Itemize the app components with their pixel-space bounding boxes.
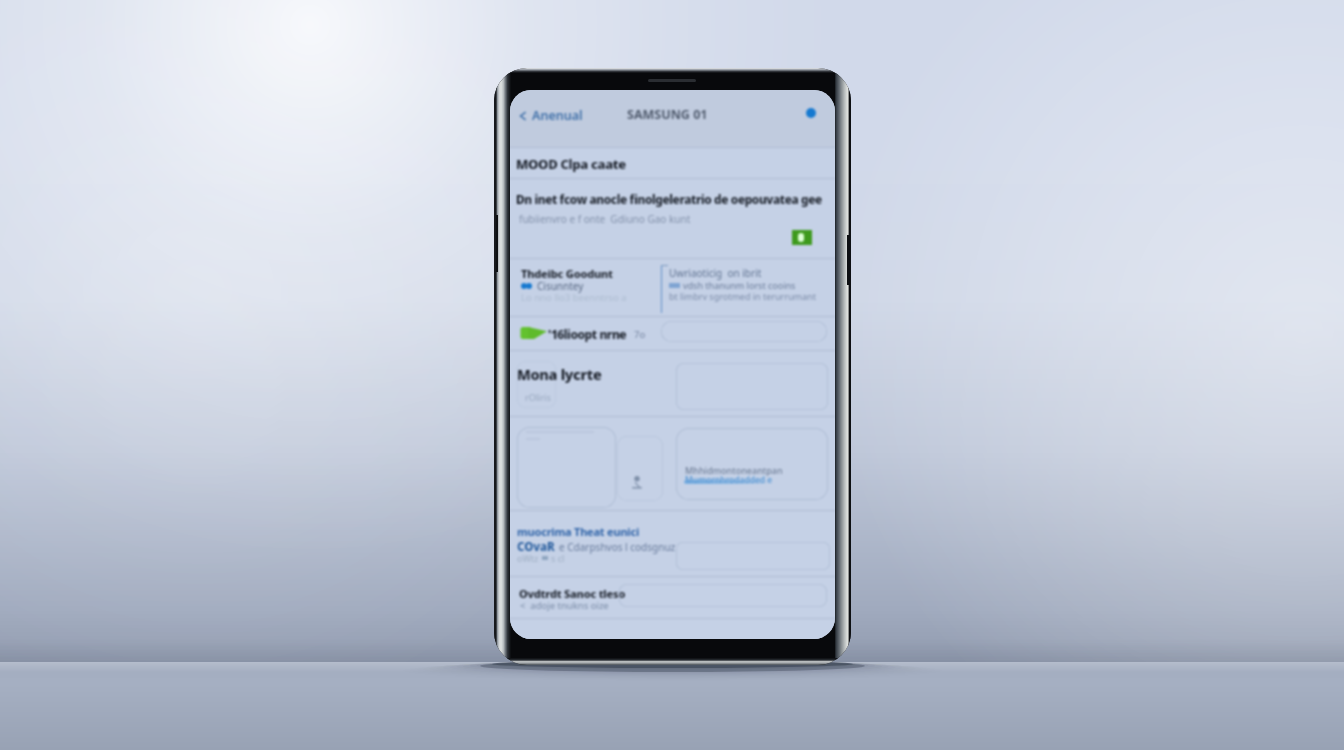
button[interactable]: MOOD Clpa caate: [510, 148, 835, 178]
staticText: Lo nno llo3 beenntrso a: [521, 291, 627, 304]
staticText: 7o: [634, 328, 646, 341]
staticText: Mhhidmontoneantpan: [685, 464, 783, 476]
button[interactable]: Verified: [792, 230, 812, 245]
staticText: Anenual: [532, 107, 583, 124]
staticText: Cisunntey: [537, 279, 584, 293]
staticText: muocrima Theat eunici: [517, 524, 640, 539]
button[interactable]: Anenual: [517, 107, 583, 124]
staticText: Mumornhrodadded e: [685, 474, 773, 486]
staticText: Ovdtrdt Sanoc tleso: [519, 586, 626, 601]
staticText: Uwriaoticig on ibrit: [669, 266, 762, 280]
staticText: fubiienvro e f onte Gdiuno Gao kunt: [519, 212, 691, 226]
staticText: Thdeibc Goodunt: [521, 266, 613, 281]
other: Inspect: [629, 474, 645, 490]
staticText: SAMSUNG 01: [627, 106, 708, 123]
staticText: < adoje tnukns oize: [520, 599, 609, 612]
staticText: '16lioopt nrne: [548, 326, 627, 342]
button[interactable]: Enabled toggle: [520, 326, 547, 340]
staticText: rOliris: [525, 391, 551, 403]
staticText: s cl: [551, 552, 565, 564]
staticText: Dn inet fcow anocle finolgeleratrio de o…: [516, 191, 822, 207]
staticText: oWtz: [517, 552, 539, 564]
staticText: bt limbrv sgrotmed in terurrumant: [669, 290, 816, 302]
button[interactable]: [619, 584, 827, 607]
button[interactable]: Account status: [806, 108, 816, 118]
staticText: MOOD Clpa caate: [516, 155, 626, 173]
button[interactable]: Inspect: [617, 436, 663, 501]
staticText: e Cdarpshvos l codsgnuz: [559, 540, 676, 554]
button[interactable]: Mhhidmontoneantpan: [676, 428, 828, 500]
staticText: COvaR: [517, 539, 555, 555]
staticText: Mona lycrte: [517, 364, 602, 384]
button[interactable]: Dn inet fcow anocle finolgeleratrio de o…: [510, 179, 835, 258]
staticText: vdsh thanunm lorst cooins: [683, 279, 796, 291]
